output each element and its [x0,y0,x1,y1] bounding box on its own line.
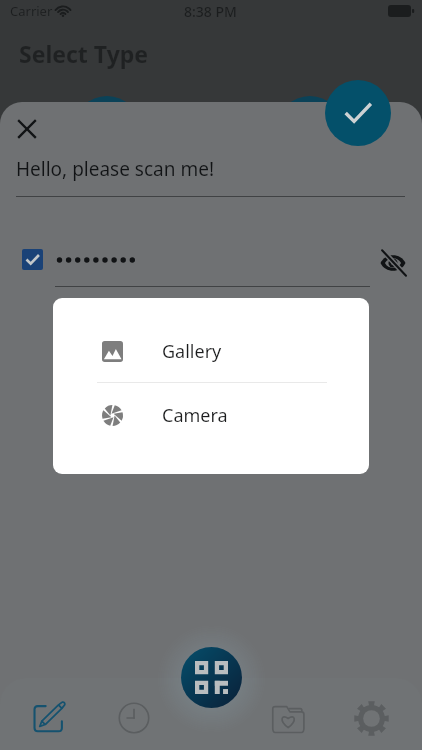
staticText: Carrier [10,2,53,20]
button[interactable]: Close [8,110,45,147]
button[interactable]: Confirm [325,80,391,146]
button[interactable]: Password protected [22,249,43,270]
button[interactable]: Gallery [53,319,369,383]
button[interactable]: History [106,690,162,746]
staticText: Hello, please scan me! [16,156,214,182]
button[interactable]: Scan QR code [181,647,242,708]
button[interactable]: Settings [343,690,399,746]
button[interactable]: Create [22,690,78,746]
button[interactable]: Show password [374,244,411,281]
staticText: Gallery [162,339,222,364]
staticText: Camera [162,403,228,428]
staticText: Select Type [19,38,149,69]
button[interactable]: Favorites [260,690,316,746]
button[interactable]: Camera [53,383,369,447]
staticText: 8:38 PM [184,2,237,21]
